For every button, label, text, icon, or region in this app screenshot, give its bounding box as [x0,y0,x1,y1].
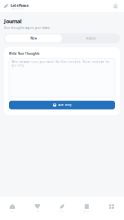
button[interactable]: Save Entry [9,101,115,109]
staticText: Calm [36,210,39,212]
button[interactable]: Profile [111,2,120,11]
staticText: Journal [4,18,22,25]
button[interactable]: Calm [25,196,50,220]
staticText: calm in your pocket [10,8,23,10]
button[interactable]: Journal [74,196,99,220]
staticText: New [30,37,36,40]
button[interactable]: Focus [50,196,74,220]
staticText: More [110,210,114,212]
button[interactable]: More [99,196,124,220]
staticText: Home [10,210,14,212]
staticText: Focus [59,210,64,212]
button[interactable]: History [62,34,119,42]
staticText: Journal [84,210,89,212]
staticText: LetsPeace [10,3,28,8]
staticText: History [86,37,95,40]
staticText: Your thoughts stay on your device. [4,26,51,30]
staticText: Write Your Thoughts [9,52,39,55]
button[interactable]: Home [0,196,25,220]
button[interactable]: New [5,34,62,42]
staticText: Write whatever is on your mind. No filte… [11,60,109,67]
staticText: Save Entry [58,103,71,107]
